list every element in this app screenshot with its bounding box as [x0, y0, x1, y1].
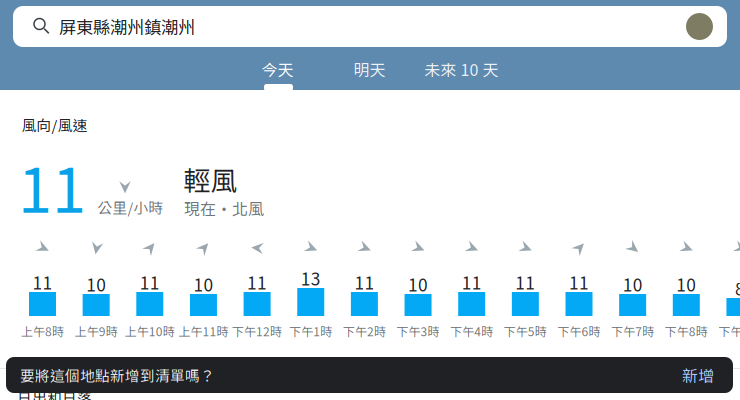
staticText: 下午6時	[557, 322, 600, 340]
button[interactable]: 新增	[671, 357, 725, 393]
button[interactable]: 屏東縣潮州鎮潮州	[13, 6, 727, 47]
staticText: 下午3時	[397, 322, 440, 340]
staticText: 11	[354, 269, 374, 295]
staticText: 輕風	[183, 160, 237, 198]
staticText: 13	[301, 265, 321, 291]
staticText: 10	[86, 271, 106, 297]
staticText: 11	[18, 142, 86, 230]
button[interactable]: 今天	[245, 51, 309, 87]
staticText: 上午9時	[75, 322, 118, 340]
staticText: 10	[676, 271, 696, 297]
staticText: 新增	[682, 363, 714, 387]
staticText: 下午7時	[611, 322, 654, 340]
staticText: 11	[515, 269, 535, 295]
staticText: 11	[247, 269, 267, 295]
staticText: 今天	[261, 57, 293, 81]
staticText: 10	[408, 271, 428, 297]
staticText: 上午10時	[125, 322, 175, 340]
staticText: 上午8時	[21, 322, 64, 340]
staticText: 下午2時	[343, 322, 386, 340]
staticText: 日出和日落	[17, 386, 92, 400]
staticText: 現在・北風	[184, 196, 264, 220]
staticText: 屏東縣潮州鎮潮州	[59, 14, 195, 39]
staticText: 8	[735, 275, 740, 301]
button[interactable]: 明天	[337, 51, 401, 87]
staticText: 明天	[353, 57, 385, 81]
staticText: 下午4時	[450, 322, 493, 340]
staticText: 11	[32, 269, 52, 295]
button[interactable]: 未來 10 天	[411, 51, 511, 87]
staticText: 11	[462, 269, 482, 295]
staticText: 風向/風速	[21, 114, 87, 135]
staticText: 10	[193, 271, 213, 297]
staticText: 下午5時	[504, 322, 547, 340]
staticText: 11	[569, 269, 589, 295]
staticText: 下午1時	[289, 322, 332, 340]
staticText: 11	[140, 269, 160, 295]
staticText: 下午8時	[665, 322, 708, 340]
staticText: 未來 10 天	[424, 57, 498, 81]
staticText: 上午11時	[178, 322, 228, 340]
staticText: 下午12時	[232, 322, 282, 340]
staticText: 10	[623, 271, 643, 297]
staticText: 要將這個地點新增到清單嗎？	[20, 364, 215, 386]
staticText: 下午9時	[718, 322, 740, 340]
staticText: 公里/小時	[97, 196, 163, 218]
